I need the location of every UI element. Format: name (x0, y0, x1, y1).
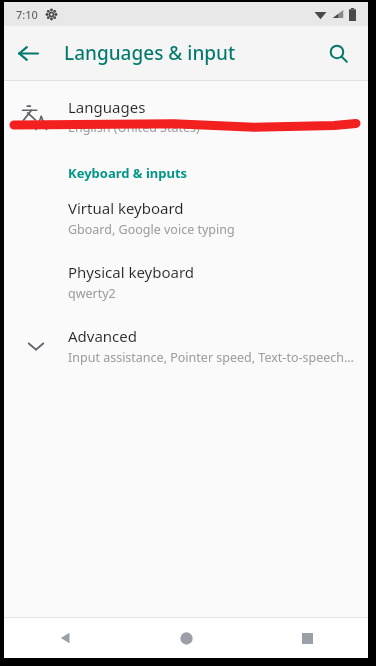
staticText: English (United States) (68, 119, 200, 136)
staticText: Gboard, Google voice typing (68, 221, 235, 238)
button[interactable]: Advanced (4, 322, 368, 370)
staticText: Keyboard & inputs (68, 164, 188, 182)
staticText: Advanced (68, 326, 138, 346)
staticText: 7:10 (16, 7, 38, 22)
button[interactable]: Search (314, 29, 362, 77)
button[interactable]: Virtual keyboard (4, 194, 368, 242)
button[interactable]: Back (4, 618, 126, 658)
button[interactable]: Languages (4, 91, 368, 142)
staticText: Languages (68, 97, 146, 117)
button[interactable]: Back (4, 29, 52, 77)
staticText: Physical keyboard (68, 262, 195, 282)
staticText: Input assistance, Pointer speed, Text-to… (68, 349, 354, 366)
button[interactable]: Recent apps (247, 618, 368, 658)
button[interactable]: Home (126, 618, 247, 658)
staticText: Virtual keyboard (68, 198, 184, 218)
staticText: Languages & input (64, 40, 236, 66)
button[interactable]: Physical keyboard (4, 258, 368, 306)
staticText: qwerty2 (68, 285, 116, 302)
